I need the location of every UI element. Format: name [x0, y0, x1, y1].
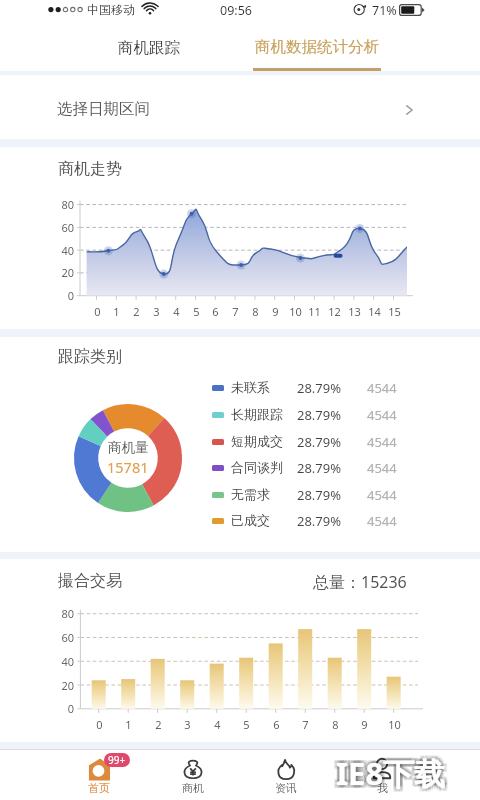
staticText: 4544 — [367, 486, 397, 504]
staticText: 60 — [61, 630, 74, 645]
staticText: 7 — [302, 717, 309, 732]
staticText: IE8下载 — [334, 750, 444, 792]
staticText: 60 — [61, 220, 74, 235]
staticText: 28.79% — [297, 379, 342, 397]
staticText: IE8下载 — [336, 749, 446, 791]
staticText: 71% — [372, 2, 397, 19]
staticText: IE8下载 — [333, 755, 443, 797]
staticText: 09:56 — [220, 2, 252, 19]
staticText: 长期跟踪 — [231, 406, 283, 422]
staticText: 10 — [289, 304, 302, 319]
staticText: 4544 — [367, 433, 397, 451]
staticText: 商机 — [182, 781, 204, 795]
staticText: 未联系 — [231, 379, 270, 395]
staticText: 2 — [155, 717, 162, 732]
staticText: 5 — [193, 304, 200, 319]
staticText: 12 — [328, 304, 341, 319]
staticText: 80 — [61, 606, 74, 621]
staticText: IE8下载 — [333, 752, 443, 794]
staticText: IE8下载 — [339, 749, 449, 791]
staticText: 商机走势 — [58, 159, 122, 179]
staticText: 1 — [125, 717, 132, 732]
staticText: IE8下载 — [338, 750, 448, 792]
staticText: 4544 — [367, 406, 397, 424]
staticText: 合同谈判 — [231, 459, 283, 475]
button[interactable]: 资讯 — [253, 752, 319, 798]
staticText: 中国移动 — [87, 2, 135, 17]
staticText: 14 — [368, 304, 381, 319]
staticText: 8 — [332, 717, 339, 732]
staticText: 7 — [232, 304, 239, 319]
staticText: 80 — [61, 197, 74, 212]
staticText: IE8下载 — [338, 754, 448, 796]
staticText: 短期成交 — [231, 433, 283, 449]
staticText: 0 — [67, 701, 74, 716]
staticText: 28.79% — [297, 406, 342, 424]
staticText: 28.79% — [297, 433, 342, 451]
staticText: 11 — [308, 304, 321, 319]
staticText: 4544 — [367, 512, 397, 530]
staticText: 4544 — [367, 459, 397, 477]
staticText: 28.79% — [297, 459, 342, 477]
button[interactable]: 商机数据统计分析 — [249, 28, 385, 71]
staticText: 99+ — [108, 753, 126, 767]
staticText: 2 — [133, 304, 140, 319]
staticText: IE8下载 — [336, 755, 446, 797]
staticText: 首页 — [88, 781, 110, 795]
staticText: 0 — [67, 288, 74, 303]
staticText: IE8下载 — [339, 752, 449, 794]
staticText: 0 — [94, 304, 101, 319]
staticText: 28.79% — [297, 486, 342, 504]
staticText: IE8下载 — [339, 755, 449, 797]
staticText: 9 — [361, 717, 368, 732]
staticText: 4 — [173, 304, 180, 319]
staticText: down.it168.com — [406, 782, 470, 794]
staticText: 8 — [252, 304, 259, 319]
staticText: 3 — [184, 717, 191, 732]
staticText: 40 — [61, 243, 74, 258]
staticText: 商机跟踪 — [118, 38, 180, 58]
staticText: 15781 — [107, 457, 149, 477]
staticText: 商机数据统计分析 — [255, 37, 379, 57]
staticText: 1 — [113, 304, 120, 319]
staticText: 撮合交易 — [58, 571, 122, 591]
staticText: 商机量 — [108, 439, 149, 456]
staticText: 跟踪类别 — [58, 347, 122, 367]
staticText: 选择日期区间 — [57, 99, 150, 119]
staticText: 无需求 — [231, 486, 270, 502]
button[interactable]: 我 — [349, 752, 415, 798]
staticText: 我 — [377, 781, 388, 795]
staticText: 4 — [214, 717, 221, 732]
staticText: 20 — [61, 265, 74, 280]
staticText: 13 — [348, 304, 361, 319]
staticText: IE8下载 — [336, 752, 446, 794]
staticText: 40 — [61, 654, 74, 669]
staticText: 6 — [212, 304, 219, 319]
staticText: IE8下载 — [334, 754, 444, 796]
staticText: 6 — [273, 717, 280, 732]
staticText: 15 — [388, 304, 401, 319]
button[interactable]: 首页 — [66, 752, 132, 798]
staticText: 0 — [96, 717, 103, 732]
staticText: 3 — [153, 304, 160, 319]
staticText: IE8下载 — [333, 749, 443, 791]
staticText: 5 — [243, 717, 250, 732]
staticText: 20 — [61, 678, 74, 693]
staticText: 总量：15236 — [313, 571, 407, 593]
button[interactable]: 商机跟踪 — [102, 28, 195, 71]
staticText: 4544 — [367, 379, 397, 397]
staticText: 已成交 — [231, 512, 270, 528]
other: Select date range — [406, 105, 413, 115]
staticText: 9 — [272, 304, 279, 319]
button[interactable]: 商机 — [160, 752, 226, 798]
staticText: 资讯 — [275, 781, 297, 795]
staticText: 28.79% — [297, 512, 342, 530]
button[interactable]: 选择日期区间 — [0, 75, 480, 139]
staticText: 10 — [388, 717, 401, 732]
